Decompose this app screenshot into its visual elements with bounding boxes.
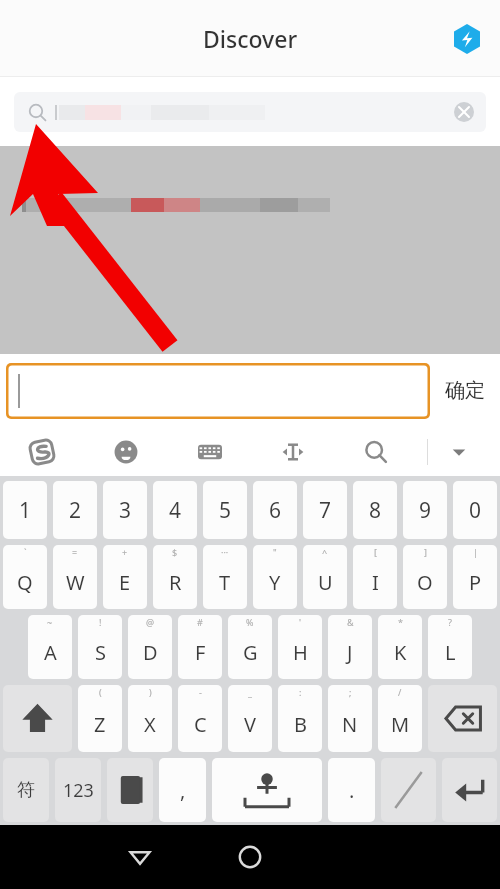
button[interactable]: $ xyxy=(153,545,197,609)
button[interactable]: ··· xyxy=(203,545,247,609)
button[interactable]: 1 xyxy=(3,481,47,539)
button[interactable]: 9 xyxy=(403,481,447,539)
button[interactable]: Boost xyxy=(450,22,484,56)
button[interactable]: 确定 xyxy=(430,354,500,427)
button[interactable]: Enter xyxy=(442,758,497,822)
button[interactable]: : xyxy=(278,685,322,752)
button[interactable]: Search xyxy=(334,427,417,476)
staticText: / xyxy=(398,686,402,698)
button[interactable]: = xyxy=(53,545,97,609)
staticText: 符 xyxy=(17,779,35,802)
button[interactable]: 3 xyxy=(103,481,147,539)
button[interactable]: Keyboard layout xyxy=(168,427,251,476)
button[interactable]: , xyxy=(159,758,206,822)
button[interactable]: ) xyxy=(128,685,172,752)
staticText: ( xyxy=(99,686,102,698)
staticText: , xyxy=(180,777,186,804)
button[interactable]: Clear xyxy=(14,92,486,132)
button[interactable]: [ xyxy=(353,545,397,609)
staticText: . xyxy=(349,777,355,804)
staticText: U xyxy=(318,569,333,596)
button[interactable]: ` xyxy=(3,545,47,609)
staticText: : xyxy=(299,686,302,698)
button[interactable]: ! xyxy=(78,615,122,679)
button[interactable]: Collapse xyxy=(417,427,500,476)
staticText: % xyxy=(246,616,254,628)
button[interactable]: @ xyxy=(128,615,172,679)
button[interactable]: & xyxy=(328,615,372,679)
button[interactable]: 6 xyxy=(253,481,297,539)
button[interactable]: ^ xyxy=(303,545,347,609)
staticText: 9 xyxy=(419,496,432,525)
staticText: G xyxy=(243,639,258,666)
button[interactable]: 0 xyxy=(453,481,497,539)
button[interactable]: * xyxy=(378,615,422,679)
button[interactable]: ~ xyxy=(28,615,72,679)
staticText: ) xyxy=(149,686,152,698)
button[interactable]: Shift xyxy=(3,685,72,752)
button[interactable]: Input language xyxy=(107,758,153,822)
button[interactable]: / xyxy=(378,685,422,752)
button[interactable]: Backspace xyxy=(428,685,497,752)
staticText: ! xyxy=(99,616,102,628)
button[interactable]: 8 xyxy=(353,481,397,539)
button[interactable]: ] xyxy=(403,545,447,609)
button[interactable]: ( xyxy=(78,685,122,752)
button[interactable]: % xyxy=(228,615,272,679)
staticText: ' xyxy=(299,616,302,628)
staticText: O xyxy=(417,569,433,596)
staticText: ? xyxy=(448,616,452,628)
staticText: B xyxy=(294,711,307,738)
button[interactable]: ? xyxy=(428,615,472,679)
staticText: # xyxy=(197,616,203,628)
button[interactable]: 7 xyxy=(303,481,347,539)
button[interactable]: 5 xyxy=(203,481,247,539)
button[interactable]: 2 xyxy=(53,481,97,539)
staticText: ··· xyxy=(221,546,229,558)
staticText: H xyxy=(293,639,308,666)
staticText: X xyxy=(144,711,156,738)
staticText: 8 xyxy=(369,496,382,525)
staticText: 5 xyxy=(219,496,232,525)
button[interactable]: 123 xyxy=(55,758,101,822)
staticText: V xyxy=(244,711,256,738)
staticText: " xyxy=(273,546,277,558)
button[interactable] xyxy=(6,363,430,419)
button[interactable]: - xyxy=(178,685,222,752)
button[interactable]: Chinese English toggle xyxy=(381,758,436,822)
staticText: D xyxy=(143,639,158,666)
button[interactable]: Space xyxy=(212,758,322,822)
staticText: Z xyxy=(94,711,106,738)
staticText: R xyxy=(169,569,182,596)
staticText: Discover xyxy=(203,23,298,54)
button[interactable]: _ xyxy=(228,685,272,752)
staticText: S xyxy=(95,639,106,666)
button[interactable]: Back xyxy=(123,840,157,874)
button[interactable]: . xyxy=(328,758,375,822)
button[interactable]: Clear xyxy=(454,102,474,122)
staticText: 确定 xyxy=(445,378,485,403)
button[interactable]: ' xyxy=(278,615,322,679)
button[interactable]: Emoji xyxy=(84,427,168,476)
staticText: - xyxy=(199,686,202,698)
button[interactable]: Sogou xyxy=(0,427,84,476)
button[interactable]: + xyxy=(103,545,147,609)
button[interactable]: ; xyxy=(328,685,372,752)
staticText: 3 xyxy=(119,496,132,525)
staticText: 1 xyxy=(19,496,32,525)
button[interactable]: Cursor xyxy=(251,427,334,476)
button[interactable]: Home xyxy=(233,840,267,874)
button[interactable]: " xyxy=(253,545,297,609)
button[interactable]: 4 xyxy=(153,481,197,539)
staticText: 123 xyxy=(63,778,94,803)
button[interactable]: | xyxy=(453,545,497,609)
staticText: I xyxy=(372,569,379,596)
staticText: ~ xyxy=(47,616,53,628)
staticText: ` xyxy=(24,546,27,558)
button[interactable]: # xyxy=(178,615,222,679)
button[interactable]: 符 xyxy=(3,758,49,822)
staticText: | xyxy=(473,546,478,558)
staticText: C xyxy=(194,711,207,738)
staticText: 4 xyxy=(169,496,182,525)
staticText: Q xyxy=(17,569,33,596)
